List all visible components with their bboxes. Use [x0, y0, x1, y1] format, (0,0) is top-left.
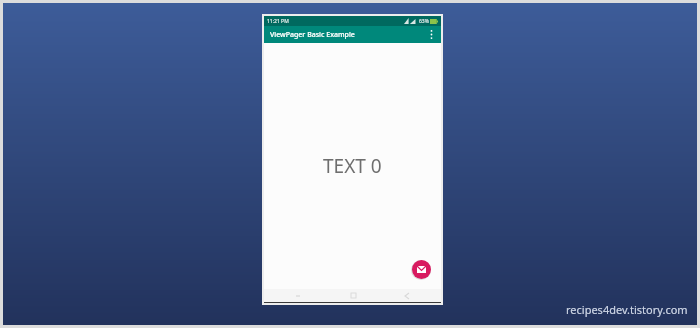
button[interactable]: Back	[387, 289, 427, 302]
button[interactable]: Home	[333, 289, 373, 302]
staticText: 63%	[419, 18, 429, 25]
staticText: 11:21 PM	[267, 18, 289, 25]
staticText: ViewPager Basic Example	[270, 30, 355, 40]
button[interactable]: Compose mail	[412, 260, 431, 279]
staticText: TEXT 0	[323, 153, 382, 179]
staticText: recipes4dev.tistory.com	[566, 302, 688, 317]
button[interactable]: More options	[425, 26, 438, 43]
